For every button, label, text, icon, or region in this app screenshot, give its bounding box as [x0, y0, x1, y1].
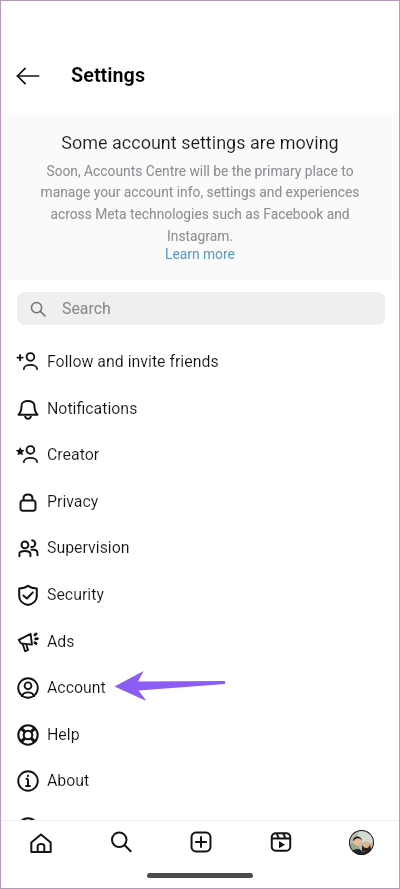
button[interactable]: Profile — [347, 828, 375, 856]
button[interactable]: Privacy — [1, 478, 399, 525]
button[interactable]: Search — [17, 292, 385, 325]
button[interactable]: Supervision — [1, 524, 399, 571]
staticText: Ads — [47, 632, 75, 651]
staticText: About — [47, 771, 90, 790]
button[interactable]: Home — [20, 822, 62, 864]
staticText: Learn more — [165, 246, 235, 262]
staticText: Soon, Accounts Centre will be the primar… — [24, 163, 376, 244]
staticText: Security — [47, 585, 104, 604]
staticText: Supervision — [47, 538, 130, 557]
button[interactable]: Account — [1, 664, 399, 711]
button[interactable]: Notifications — [1, 385, 399, 432]
button[interactable]: Create — [180, 821, 222, 863]
staticText: Account — [47, 678, 106, 697]
staticText: Follow and invite friends — [47, 352, 219, 371]
staticText: Help — [47, 725, 80, 744]
button[interactable]: Settings — [1, 804, 399, 851]
staticText: Creator — [47, 445, 100, 464]
staticText: Privacy — [47, 492, 99, 511]
button[interactable]: Creator — [1, 431, 399, 478]
staticText: Some account settings are moving — [61, 132, 339, 153]
button[interactable]: Back — [4, 52, 52, 100]
staticText: Settings — [71, 64, 146, 87]
button[interactable]: Learn more — [165, 246, 235, 262]
button[interactable]: About — [1, 757, 399, 804]
button[interactable]: Search — [100, 821, 142, 863]
staticText: Settings — [47, 818, 106, 837]
button[interactable]: Reels — [260, 821, 302, 863]
button[interactable]: Ads — [1, 618, 399, 665]
button[interactable]: Help — [1, 711, 399, 758]
staticText: Search — [62, 299, 111, 318]
button[interactable]: Security — [1, 571, 399, 618]
staticText: Notifications — [47, 399, 138, 418]
button[interactable]: Follow and invite friends — [1, 338, 399, 385]
